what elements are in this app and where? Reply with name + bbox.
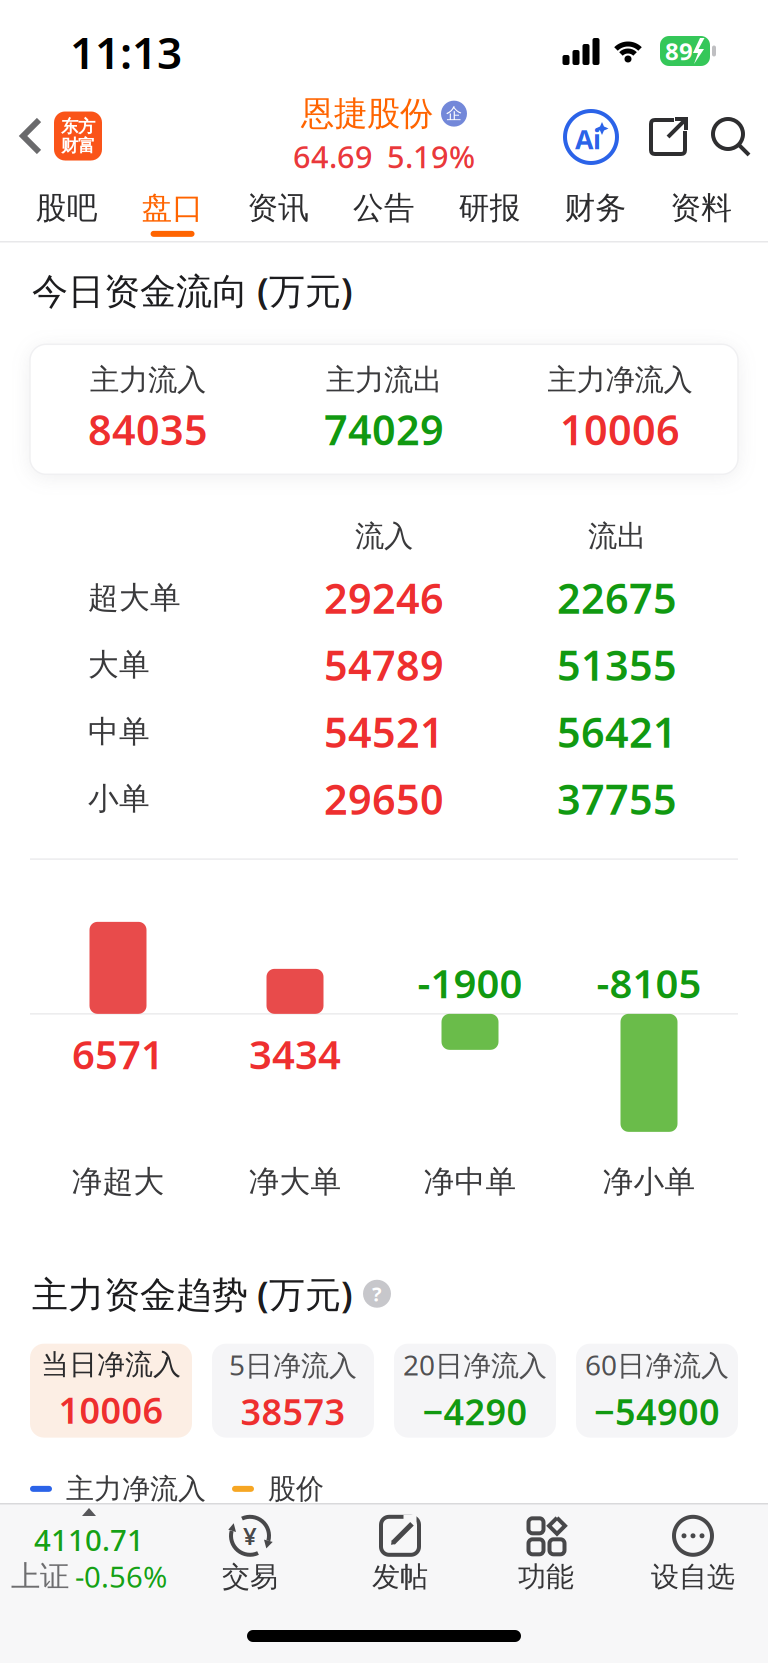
button[interactable]: 东方财富 [54, 111, 102, 160]
staticText: 财务 [564, 189, 626, 227]
staticText: 今日资金流向 (万元) [32, 266, 353, 314]
button[interactable]: 股吧 [14, 189, 120, 237]
staticText: 11:13 [70, 23, 182, 81]
button[interactable]: 发帖 [326, 1514, 473, 1594]
button[interactable]: Ai 助手 [564, 110, 618, 164]
staticText: 37755 [557, 771, 677, 826]
staticText: 流入 [355, 518, 413, 554]
staticText: 主力净流入 [547, 362, 692, 398]
staticText: 54521 [324, 704, 444, 759]
button[interactable]: 5日净流入 [212, 1344, 374, 1438]
button[interactable]: 60日净流入 [576, 1344, 738, 1438]
staticText: 20日净流入 [403, 1346, 547, 1383]
button[interactable]: 功能 [472, 1514, 619, 1594]
button[interactable]: 研报 [437, 189, 543, 237]
button[interactable]: Search [711, 117, 751, 157]
staticText: 盘口 [142, 189, 204, 227]
staticText: 净中单 [423, 1163, 516, 1201]
staticText: 主力流出 [326, 362, 442, 398]
staticText: -0.56% [75, 1557, 167, 1596]
staticText: −4290 [422, 1387, 527, 1435]
staticText: 22675 [557, 570, 677, 625]
button[interactable]: 20日净流入 [394, 1344, 556, 1438]
staticText: 超大单 [88, 579, 181, 617]
staticText: ¥ [243, 1520, 257, 1552]
staticText: 5.19% [387, 136, 475, 177]
staticText: 恩捷股份 [301, 93, 433, 134]
staticText: 64.69 [293, 136, 373, 177]
staticText: 功能 [518, 1560, 574, 1594]
staticText: 51355 [557, 637, 677, 692]
button[interactable]: Share [648, 117, 688, 157]
staticText: 资料 [670, 189, 732, 227]
button[interactable]: 当日净流入 [30, 1344, 192, 1438]
staticText: Ai [575, 121, 601, 157]
staticText: 60日净流入 [585, 1346, 729, 1383]
staticText: -1900 [417, 956, 522, 1009]
staticText: 东方 [61, 116, 95, 137]
staticText: 设自选 [651, 1560, 735, 1594]
staticText: 5日净流入 [229, 1346, 357, 1383]
staticText: 89 [665, 35, 693, 67]
staticText: ? [372, 1280, 382, 1307]
button[interactable]: 4110.71 [0, 1503, 178, 1613]
staticText: 56421 [557, 704, 677, 759]
staticText: 10006 [58, 1386, 163, 1434]
staticText: 流出 [588, 518, 646, 554]
staticText: 净大单 [248, 1163, 341, 1201]
staticText: 净小单 [602, 1163, 695, 1201]
button[interactable]: Back [19, 116, 43, 156]
button[interactable]: 盘口 [120, 189, 225, 237]
staticText: 净超大 [71, 1163, 164, 1201]
staticText: 当日净流入 [41, 1347, 181, 1382]
staticText: 上证 [11, 1558, 69, 1594]
staticText: 财富 [61, 135, 95, 156]
staticText: 股价 [268, 1472, 324, 1506]
button[interactable]: 设自选 [619, 1514, 766, 1594]
staticText: 主力流入 [90, 362, 206, 398]
staticText: 发帖 [372, 1560, 428, 1594]
staticText: 股吧 [36, 189, 98, 227]
staticText: -8105 [596, 956, 701, 1009]
staticText: 交易 [222, 1560, 278, 1594]
button[interactable]: 财务 [543, 189, 648, 237]
staticText: 主力资金趋势 (万元) [32, 1270, 353, 1318]
staticText: −54900 [594, 1387, 720, 1435]
staticText: 54789 [324, 637, 444, 692]
staticText: 中单 [88, 713, 150, 751]
staticText: 研报 [459, 189, 521, 227]
staticText: 29246 [324, 570, 444, 625]
staticText: 资讯 [247, 189, 309, 227]
staticText: 74029 [324, 402, 444, 457]
button[interactable]: 资讯 [225, 189, 331, 237]
staticText: 小单 [88, 780, 150, 818]
staticText: 29650 [324, 771, 444, 826]
staticText: 10006 [560, 402, 680, 457]
staticText: 主力净流入 [66, 1472, 206, 1506]
staticText: 4110.71 [34, 1520, 144, 1559]
staticText: 38573 [240, 1387, 345, 1435]
staticText: 大单 [88, 646, 150, 684]
button[interactable]: 资料 [648, 189, 754, 237]
staticText: 84035 [88, 402, 208, 457]
staticText: 3434 [249, 1027, 341, 1080]
button[interactable]: 公告 [331, 189, 437, 237]
staticText: 6571 [72, 1027, 164, 1080]
button[interactable]: ¥ [176, 1514, 323, 1594]
staticText: 企 [446, 104, 462, 123]
staticText: 公告 [353, 189, 415, 227]
